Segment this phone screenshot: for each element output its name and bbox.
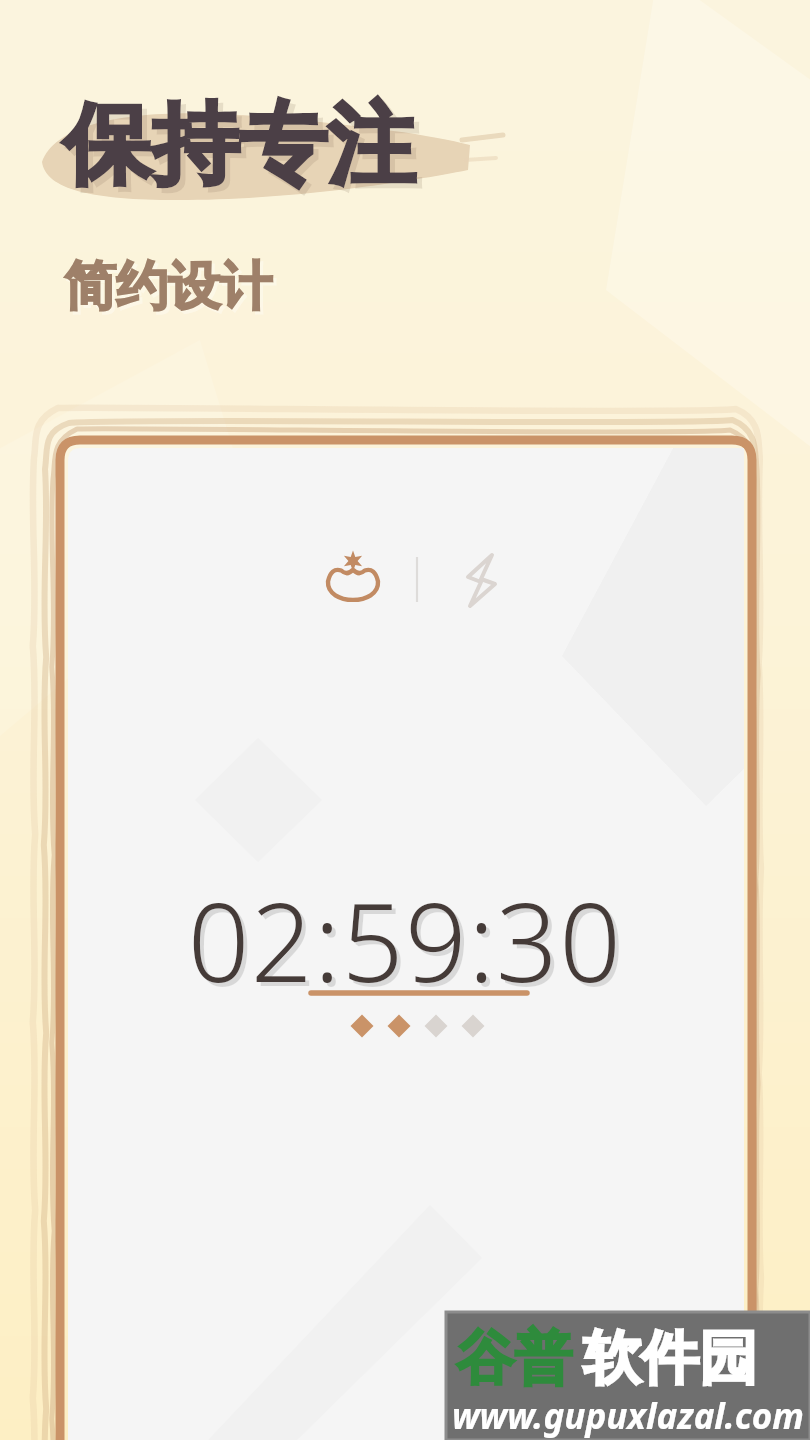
button[interactable]: Pomodoro mode xyxy=(320,550,388,618)
staticText: 02:59:30 xyxy=(0,867,810,1440)
staticText: www.gupuxlazal.com xyxy=(452,1392,804,1440)
button[interactable]: Flow mode xyxy=(449,548,517,616)
button[interactable]: Timer 02:59:30 xyxy=(200,855,610,980)
staticText: 简约设计 xyxy=(67,257,275,323)
staticText: 简约设计 xyxy=(64,254,272,320)
staticText: 谷普 xyxy=(456,1322,572,1395)
button[interactable]: Session progress xyxy=(340,1005,500,1050)
staticText: 保持专注 xyxy=(63,90,415,201)
staticText: 保持专注 xyxy=(68,95,420,206)
staticText: 02:59:30 xyxy=(4,871,810,1440)
staticText: 软件园 xyxy=(583,1322,757,1395)
